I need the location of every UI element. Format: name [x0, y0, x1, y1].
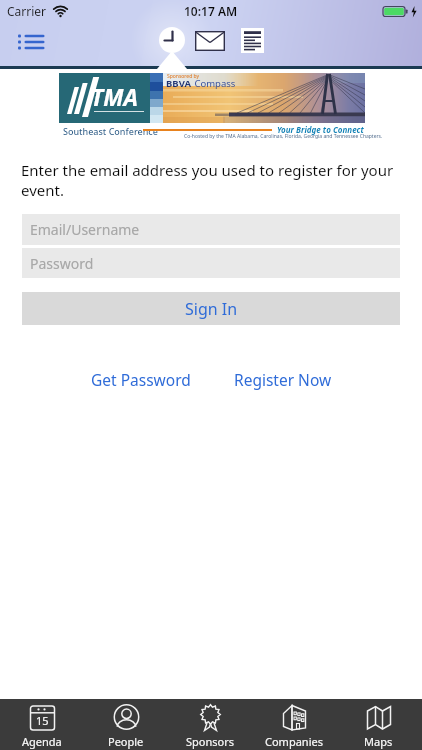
staticText: Co-hosted by the TMA Alabama, Carolinas,… [184, 133, 383, 140]
staticText: Sponsored by [167, 73, 200, 80]
staticText: 10:17 AM [184, 3, 238, 19]
staticText: Get Password [91, 369, 191, 390]
staticText: Compass [192, 77, 236, 90]
button[interactable] [18, 33, 46, 50]
staticText: Agenda [22, 734, 62, 749]
staticText: Sponsors [186, 734, 234, 749]
staticText: TMA [91, 81, 138, 112]
staticText: Your Bridge to Connect [277, 124, 364, 135]
staticText: Maps [364, 734, 393, 749]
button[interactable]: Password [22, 248, 400, 278]
button[interactable]: Sign In [22, 292, 400, 325]
button[interactable] [195, 31, 225, 51]
staticText: Carrier [7, 3, 47, 19]
staticText: BBVA [166, 77, 192, 90]
button[interactable]: Register Now [231, 366, 334, 392]
button[interactable] [159, 27, 185, 53]
staticText: Email/Username [30, 220, 140, 239]
staticText: Register Now [234, 369, 332, 390]
staticText: Password [30, 254, 94, 273]
button[interactable] [241, 28, 264, 53]
button[interactable]: 15 [0, 699, 84, 750]
staticText: Enter the email address you used to regi… [21, 160, 394, 200]
staticText: Companies [265, 734, 323, 749]
staticText: Sign In [185, 298, 238, 320]
button[interactable]: Companies [252, 699, 336, 750]
staticText: People [108, 734, 144, 749]
button[interactable]: Maps [336, 699, 420, 750]
button[interactable]: Email/Username [22, 214, 400, 245]
staticText: Southeast Conference [63, 125, 158, 137]
button[interactable]: Sponsors [168, 699, 252, 750]
button[interactable]: Get Password [88, 366, 193, 392]
staticText: 15 [36, 713, 49, 728]
button[interactable]: People [84, 699, 168, 750]
